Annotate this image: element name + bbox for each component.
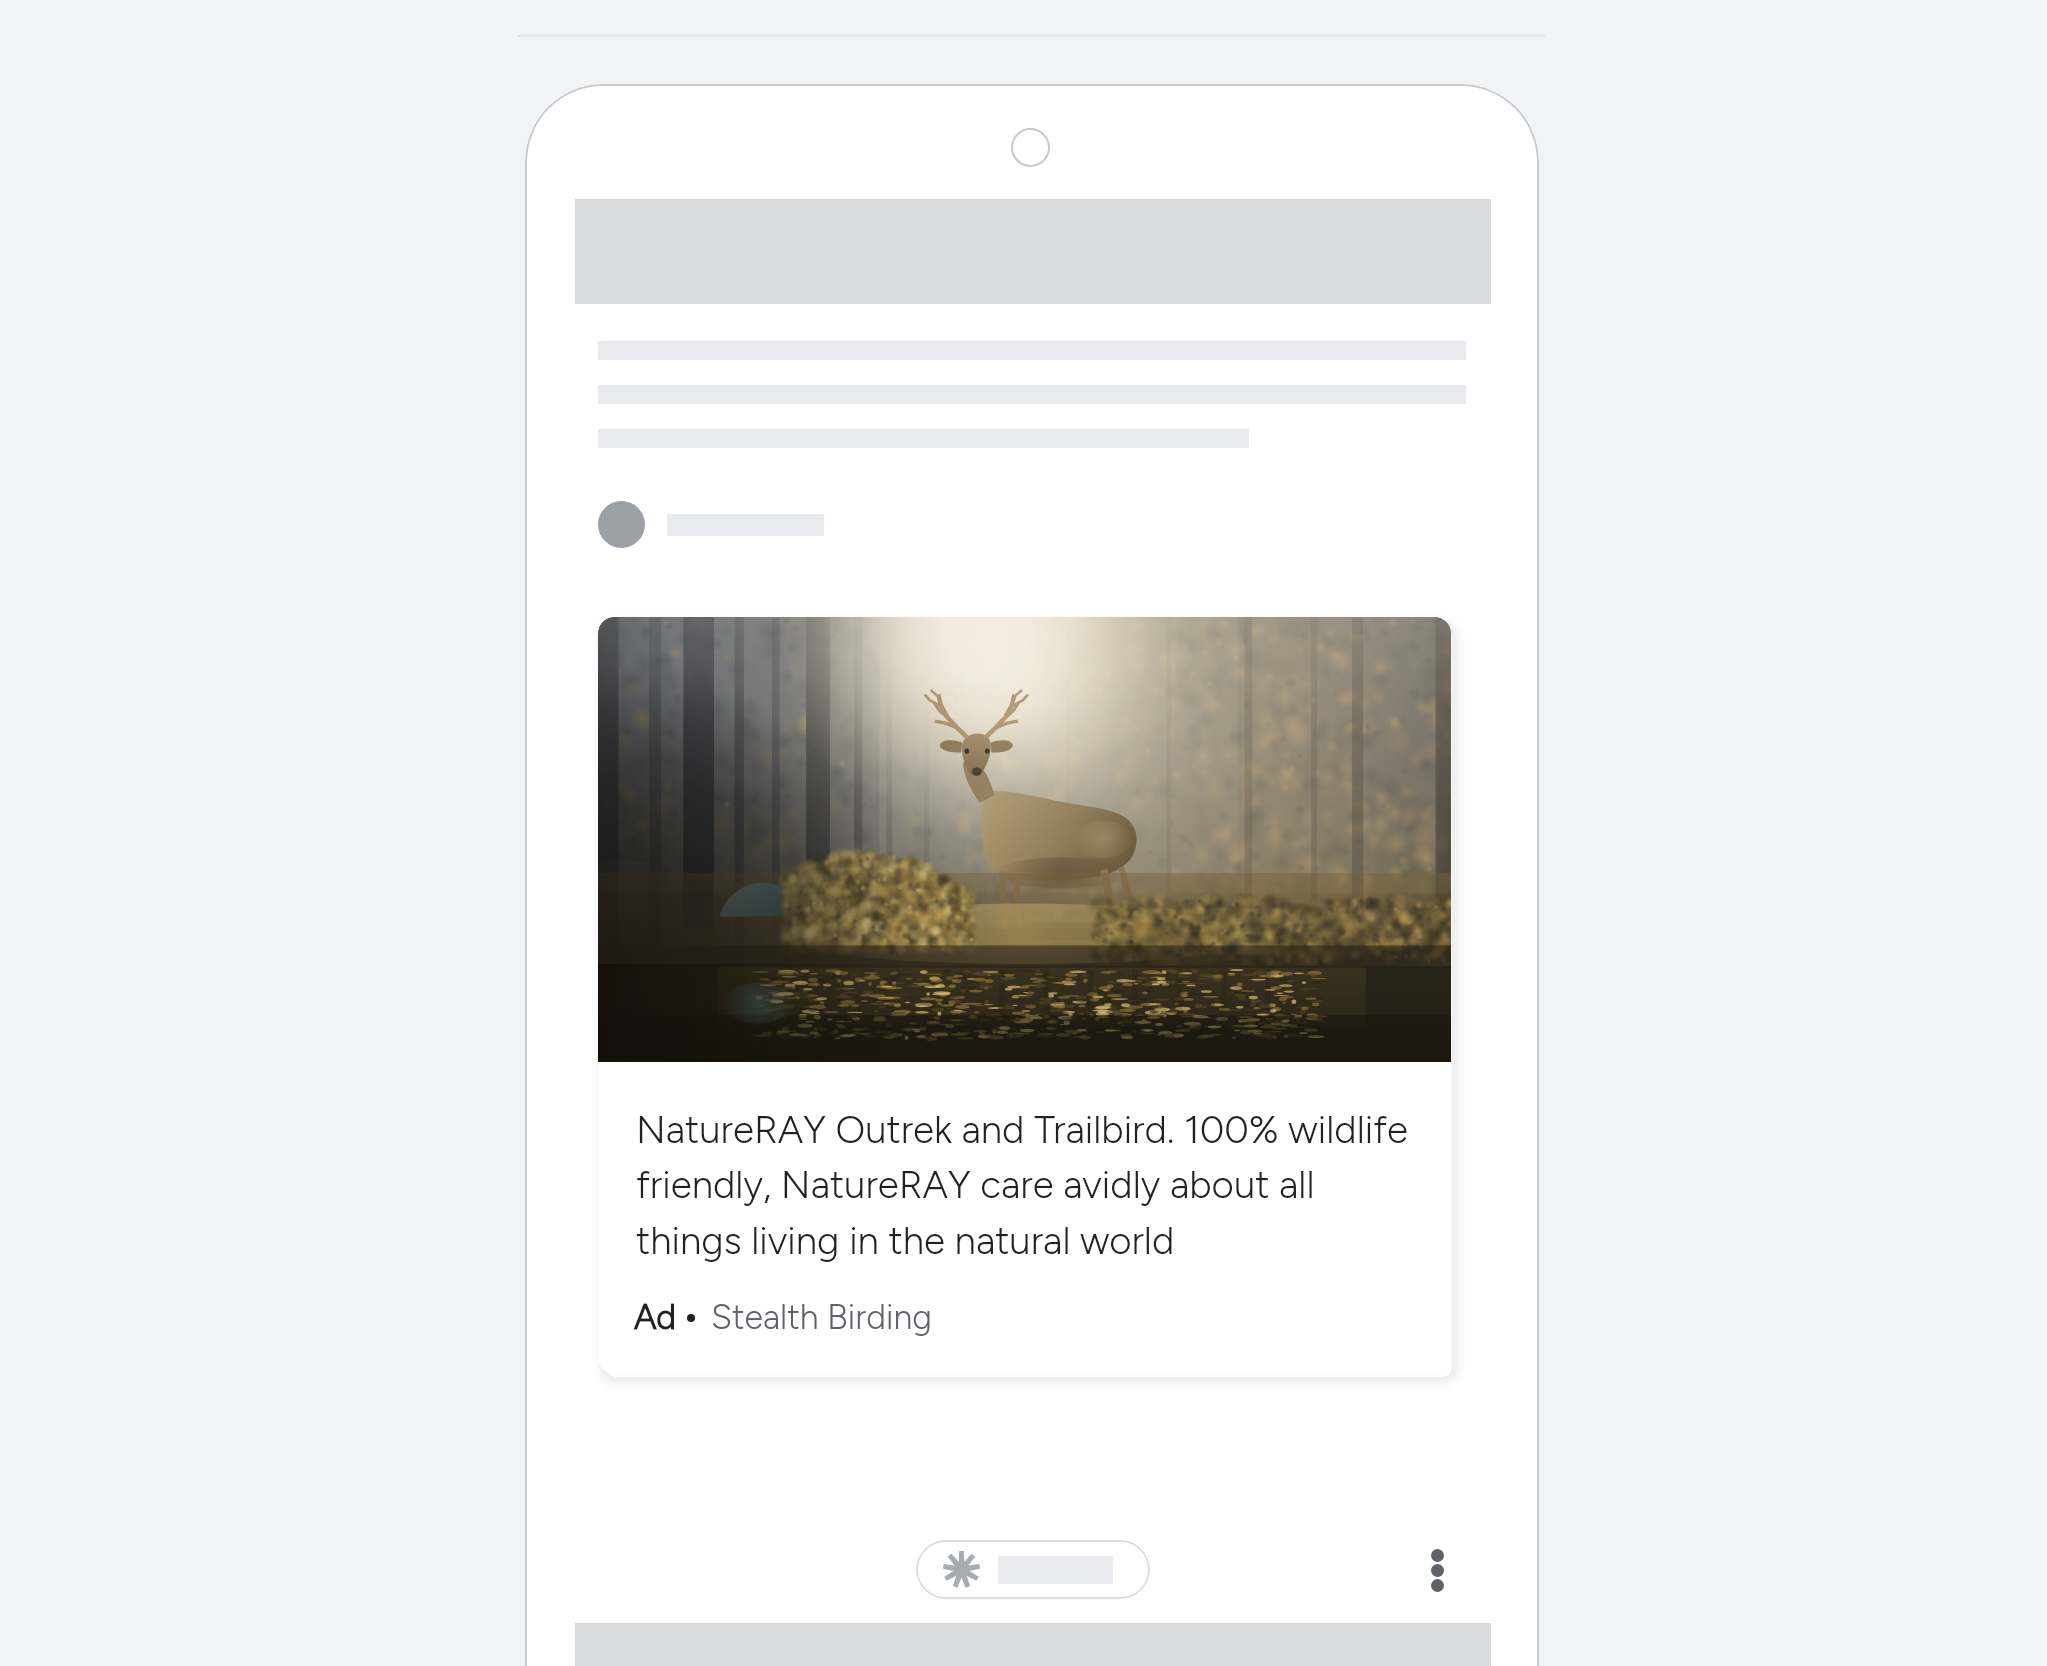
button[interactable]: More options [1407, 1540, 1467, 1600]
button[interactable]: NatureRAY Outrek and Trailbird. 100% wil… [598, 617, 1451, 1374]
staticText: Ad [634, 1297, 677, 1338]
staticText: Stealth Birding [711, 1297, 933, 1338]
button[interactable]: Search [916, 1540, 1150, 1599]
staticText: NatureRAY Outrek and Trailbird. 100% wil… [636, 1106, 1422, 1264]
